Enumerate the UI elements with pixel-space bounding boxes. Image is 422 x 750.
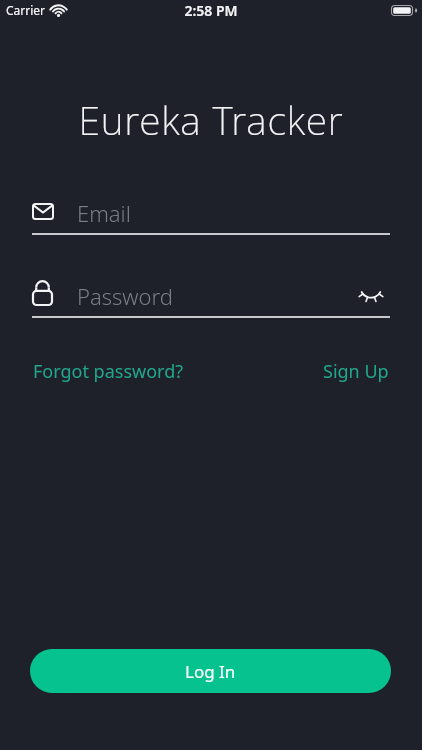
button[interactable]: Sign Up <box>323 359 389 384</box>
staticText: Eureka Tracker <box>0 93 422 146</box>
staticText: 2:58 PM <box>0 1 422 20</box>
staticText: Carrier <box>6 2 46 18</box>
button[interactable]: Forgot password? <box>33 359 184 384</box>
staticText: Log In <box>185 660 236 683</box>
staticText: Password <box>77 281 173 311</box>
staticText: Email <box>77 198 131 228</box>
button[interactable]: Password <box>32 275 390 318</box>
staticText: Forgot password? <box>33 359 184 384</box>
button[interactable]: Log In <box>30 649 391 693</box>
staticText: Sign Up <box>323 359 389 384</box>
button[interactable]: Email <box>32 192 390 235</box>
